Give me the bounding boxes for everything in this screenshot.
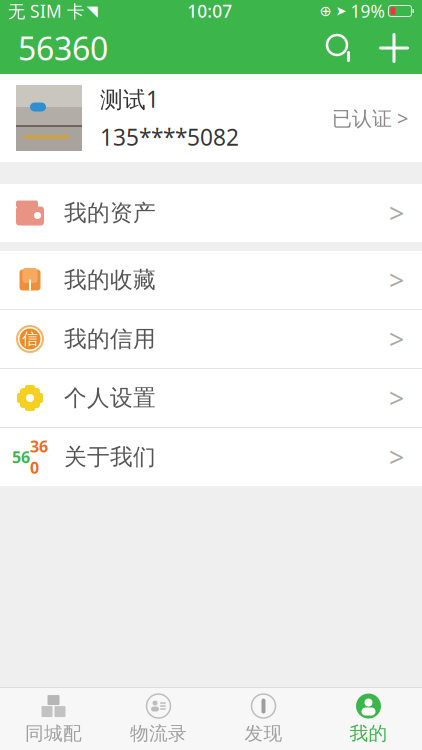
staticText: 测试1 xyxy=(100,84,159,114)
staticText: > xyxy=(389,321,404,357)
staticText: 关于我们 xyxy=(64,443,156,471)
button[interactable]: 56 xyxy=(0,428,422,486)
button[interactable]: 信 xyxy=(0,310,422,368)
staticText: 135****5082 xyxy=(100,122,239,152)
button[interactable]: 同城配 xyxy=(1,688,106,750)
button[interactable]: 个人设置 xyxy=(0,369,422,427)
staticText: > xyxy=(389,380,404,416)
staticText: ➤ xyxy=(335,3,346,18)
button[interactable]: 搜索 xyxy=(314,22,366,74)
staticText: 已认证 > xyxy=(332,105,408,131)
staticText: ⊕ xyxy=(319,3,331,19)
button[interactable]: 我的 xyxy=(316,688,421,750)
staticText: 我的信用 xyxy=(64,325,156,353)
staticText: 56360 xyxy=(18,27,108,69)
staticText: 360 xyxy=(30,436,48,478)
staticText: > xyxy=(389,195,404,231)
staticText: > xyxy=(389,262,404,298)
staticText: > xyxy=(389,439,404,475)
staticText: 物流录 xyxy=(130,722,187,745)
staticText: 信 xyxy=(22,329,38,349)
button[interactable]: 测试1 xyxy=(0,74,422,162)
staticText: 我的收藏 xyxy=(64,266,156,294)
staticText: 56 xyxy=(12,446,30,468)
staticText: 同城配 xyxy=(25,722,82,745)
staticText: 我的 xyxy=(349,722,387,745)
button[interactable]: 添加 xyxy=(366,22,422,74)
button[interactable]: 我的资产 xyxy=(0,184,422,242)
button[interactable]: 我的收藏 xyxy=(0,251,422,309)
staticText: 无 SIM 卡 xyxy=(8,0,84,22)
staticText: 10:07 xyxy=(187,0,232,22)
staticText: 我的资产 xyxy=(64,199,156,227)
button[interactable]: 物流录 xyxy=(106,688,211,750)
staticText: 个人设置 xyxy=(64,384,156,412)
staticText: 发现 xyxy=(244,722,282,745)
button[interactable]: 发现 xyxy=(211,688,316,750)
staticText: ◥ xyxy=(86,3,97,19)
staticText: 19% xyxy=(350,0,384,22)
